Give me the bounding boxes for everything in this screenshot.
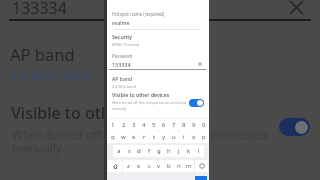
button[interactable]: 4 [139,119,149,131]
button[interactable]: k [184,145,194,157]
staticText: 2.4 GHz band [9,66,92,84]
staticText: AP band [112,75,133,82]
staticText: h [167,147,171,155]
staticText: AP band [10,43,75,65]
staticText: 133334 [12,0,67,19]
staticText: e [132,133,136,141]
button[interactable]: Visible toggle [189,99,204,107]
button[interactable]: Visible to other devices [107,91,209,113]
button[interactable]: u [169,131,179,143]
button[interactable]: x [134,160,144,172]
staticText: a [117,147,121,155]
staticText: j [178,147,180,155]
staticText: b [167,162,171,170]
staticText: o [192,133,196,141]
staticText: 0 [202,121,206,129]
staticText: q [111,133,115,141]
button[interactable]: n [174,160,184,172]
staticText: 1 [111,121,115,129]
staticText: 2 [122,121,126,129]
button[interactable]: Backspace [195,160,208,172]
button[interactable]: j [174,145,184,157]
staticText: r [143,133,146,141]
button[interactable]: 9 [189,119,199,131]
staticText: n [177,162,181,170]
button[interactable]: l [194,145,204,157]
staticText: i [183,133,185,141]
staticText: w [121,133,126,141]
button[interactable]: v [154,160,164,172]
button[interactable]: y [159,131,169,143]
button[interactable]: Visible to other devices toggle [279,118,310,136]
button[interactable]: p [199,131,209,143]
staticText: p [202,133,206,141]
staticText: x [137,162,141,170]
button[interactable]: o [189,131,199,143]
staticText: k [187,147,191,155]
staticText: 2.4 GHz band [112,84,136,88]
button[interactable]: d [134,145,144,157]
staticText: v [157,162,161,170]
button[interactable]: 6 [159,119,169,131]
button[interactable]: 3 [129,119,139,131]
staticText: 3 [132,121,136,129]
button[interactable]: z [123,160,134,172]
staticText: 5 [152,121,156,129]
staticText: y [162,133,166,141]
staticText: s [128,147,131,155]
button[interactable]: 0 [199,119,209,131]
staticText: 6 [162,121,166,129]
button[interactable]: s [124,145,134,157]
staticText: c [148,162,151,170]
staticText: 8 [182,121,186,129]
staticText: Password [112,53,133,59]
button[interactable]: q [107,131,118,143]
staticText: d [137,147,141,155]
button[interactable]: 5 [149,119,159,131]
button[interactable]: f [144,145,154,157]
staticText: When turned off, the hotspot can be conn… [12,127,268,156]
button[interactable]: i [179,131,189,143]
staticText: z [127,162,130,170]
button[interactable]: t [149,131,159,143]
button[interactable]: 2 [118,119,129,131]
button[interactable]: Shift [108,160,122,172]
button[interactable]: g [154,145,164,157]
staticText: Security [112,33,132,40]
staticText: 133334 [112,61,131,68]
button[interactable]: b [164,160,174,172]
staticText: realme [112,19,130,26]
button[interactable]: h [164,145,174,157]
button[interactable]: m [184,160,194,172]
staticText: m [186,162,192,170]
button[interactable]: Security [107,33,209,46]
button[interactable]: e [129,131,139,143]
button[interactable]: 7 [169,119,179,131]
staticText: 7 [172,121,176,129]
staticText: Visible to other devices [11,102,188,124]
button[interactable]: c [144,160,154,172]
button[interactable]: a [113,145,124,157]
button[interactable]: 8 [179,119,189,131]
staticText: u [172,133,176,141]
staticText: WPA2-Personal [112,42,140,46]
staticText: l [198,147,200,155]
staticText: 9 [192,121,196,129]
button[interactable]: w [118,131,129,143]
button[interactable]: Clear hotspot name [287,0,306,17]
staticText: Visible to other devices [112,91,170,98]
button[interactable]: 1 [107,119,118,131]
staticText: g [157,147,161,155]
button[interactable]: r [139,131,149,143]
button[interactable]: AP band [107,75,209,88]
staticText: t [153,133,156,141]
staticText: 4 [142,121,146,129]
button[interactable]: Clear password [195,59,204,68]
staticText: Hotspot name (required) [112,11,165,17]
staticText: When turned off, this hotspot can be con… [112,100,186,111]
staticText: f [148,147,151,155]
